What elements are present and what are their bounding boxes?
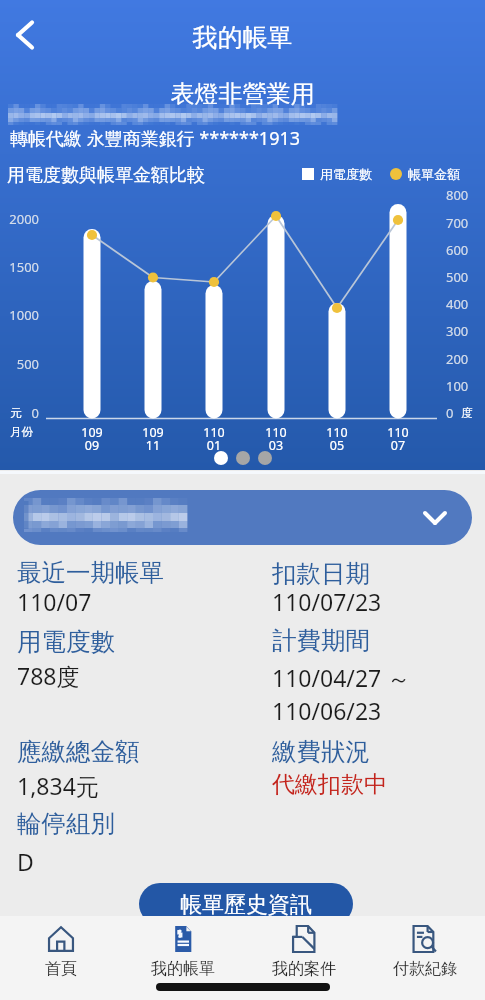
staticText: 繳費狀況 xyxy=(272,736,370,767)
staticText: 用電度數 xyxy=(320,166,372,182)
staticText: 1500 xyxy=(0,258,39,276)
staticText: 計費期間 xyxy=(272,625,370,656)
staticText: 109 xyxy=(128,424,178,441)
staticText: 元 xyxy=(10,406,22,420)
staticText: 800 xyxy=(446,186,469,204)
staticText: 788度 xyxy=(17,660,80,691)
staticText: D xyxy=(17,846,34,877)
staticText: 05 xyxy=(312,437,362,454)
staticText: 109 xyxy=(67,424,117,441)
staticText: 500 xyxy=(446,268,469,286)
staticText: 0 xyxy=(446,404,454,422)
staticText: 600 xyxy=(446,241,469,259)
staticText: 07 xyxy=(373,437,423,454)
staticText: 輪停組別 xyxy=(17,808,115,839)
button[interactable]: 付款紀錄 xyxy=(364,926,485,979)
staticText: 400 xyxy=(446,295,469,313)
staticText: 表燈非營業用 xyxy=(0,79,485,109)
staticText: 110/04/27 ～ xyxy=(272,662,411,693)
staticText: 100 xyxy=(446,377,469,395)
staticText: 110/06/23 xyxy=(272,695,382,726)
staticText: 付款紀錄 xyxy=(393,959,457,979)
staticText: 09 xyxy=(67,437,117,454)
staticText: 應繳總金額 xyxy=(17,736,140,767)
staticText: 我的帳單 xyxy=(0,22,485,53)
staticText: 110/07/23 xyxy=(272,586,382,617)
staticText: 110 xyxy=(189,424,239,441)
staticText: 300 xyxy=(446,322,469,340)
staticText: 0 xyxy=(0,404,39,422)
button[interactable]: Page 2 xyxy=(236,451,250,465)
staticText: 最近一期帳單 xyxy=(17,557,164,588)
staticText: 500 xyxy=(0,355,39,373)
staticText: 200 xyxy=(446,350,469,368)
staticText: 我的帳單 xyxy=(151,959,215,979)
staticText: 1,834元 xyxy=(17,770,99,801)
button[interactable]: Page 3 xyxy=(258,451,272,465)
button[interactable]: 我的帳單 xyxy=(122,926,243,979)
button[interactable]: 我的案件 xyxy=(243,926,364,979)
staticText: 700 xyxy=(446,214,469,232)
staticText: 用電度數 xyxy=(17,626,115,657)
button[interactable]: Expand xyxy=(13,490,472,545)
staticText: 110 xyxy=(312,424,362,441)
staticText: 2000 xyxy=(0,210,39,228)
staticText: 月份 xyxy=(10,425,33,439)
staticText: 度 xyxy=(461,406,473,420)
button[interactable]: 首頁 xyxy=(0,926,122,979)
staticText: 11 xyxy=(128,437,178,454)
staticText: 110 xyxy=(373,424,423,441)
staticText: 110 xyxy=(251,424,301,441)
staticText: 110/07 xyxy=(17,586,92,617)
staticText: 1000 xyxy=(0,306,39,324)
staticText: 代繳扣款中 xyxy=(272,770,387,799)
staticText: 帳單歷史資訊 xyxy=(180,891,312,919)
staticText: 帳單金額 xyxy=(408,166,460,182)
staticText: 用電度數與帳單金額比較 xyxy=(7,164,205,187)
button[interactable]: Back xyxy=(3,13,47,57)
staticText: 03 xyxy=(251,437,301,454)
button[interactable]: Page 1 xyxy=(214,451,228,465)
staticText: 扣款日期 xyxy=(272,558,370,589)
other: Expand xyxy=(423,511,447,525)
staticText: 01 xyxy=(189,437,239,454)
staticText: 我的案件 xyxy=(272,959,336,979)
staticText: 轉帳代繳 永豐商業銀行 ******1913 xyxy=(10,126,301,151)
button[interactable]: 帳單歷史資訊 xyxy=(139,883,353,925)
staticText: 首頁 xyxy=(45,959,77,979)
